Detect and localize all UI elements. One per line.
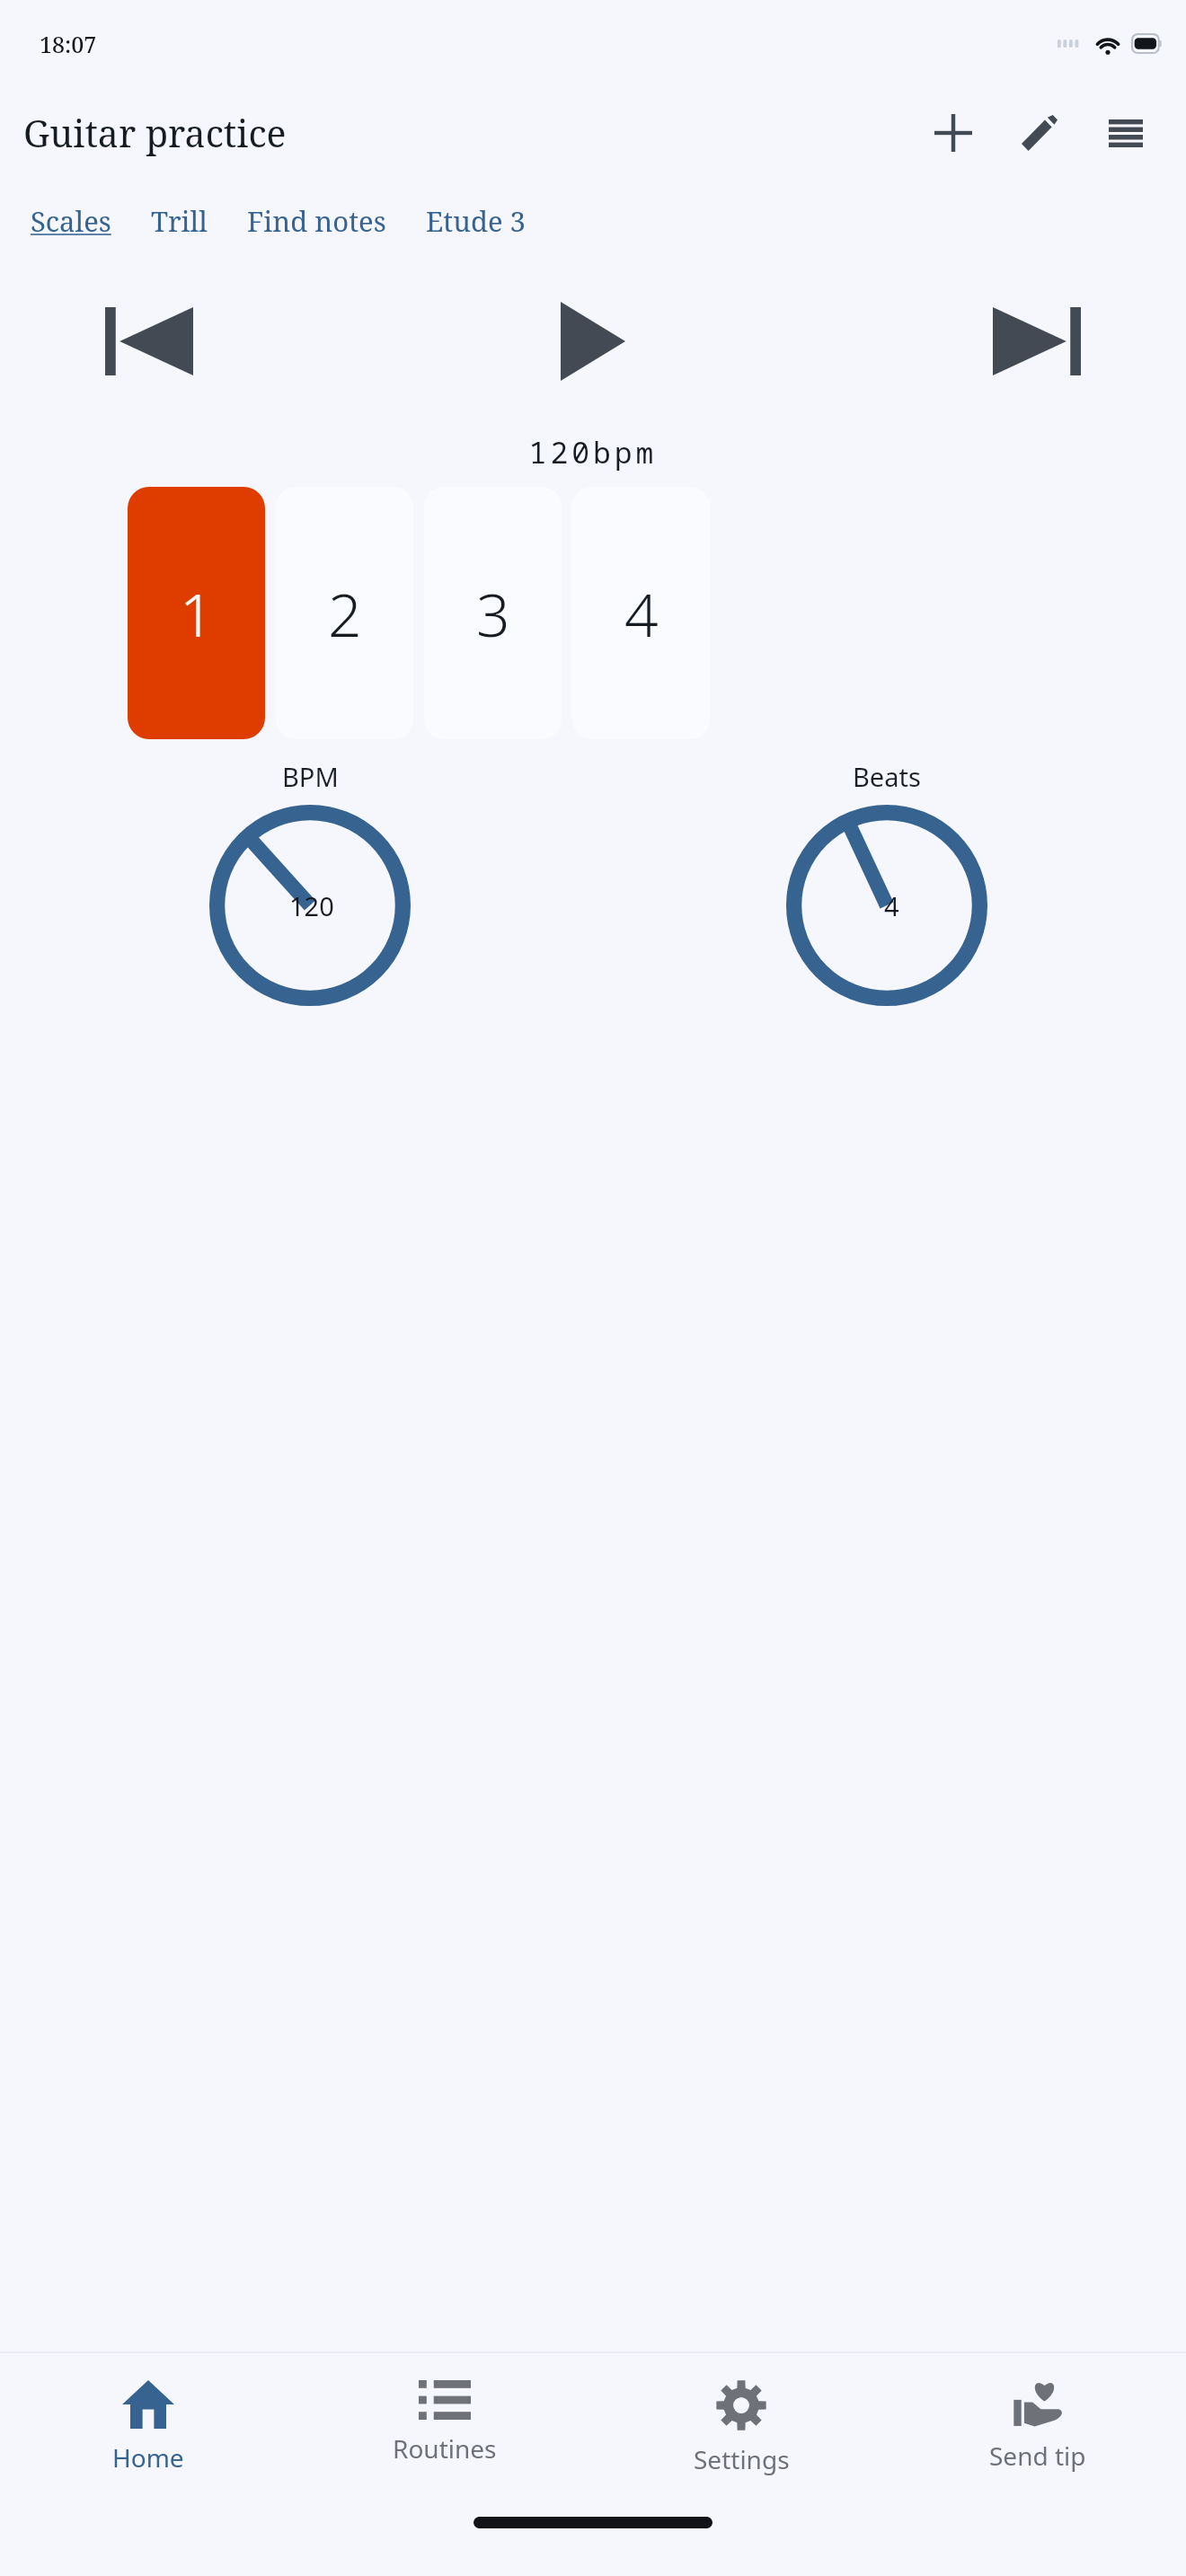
staticText: 3 xyxy=(476,573,510,654)
button[interactable]: Scales xyxy=(22,200,120,242)
button[interactable]: Send tip xyxy=(889,2353,1186,2473)
button[interactable]: Home xyxy=(0,2353,296,2475)
staticText: 2 xyxy=(328,573,362,654)
button[interactable]: 3 xyxy=(424,487,562,739)
staticText: Routines xyxy=(393,2431,497,2466)
button[interactable]: 4 xyxy=(786,805,987,1006)
staticText: 120bpm xyxy=(0,432,1186,472)
button[interactable]: 1 xyxy=(128,487,265,739)
staticText: 18:07 xyxy=(40,29,97,59)
button[interactable]: Find notes xyxy=(238,200,395,242)
staticText: 120 xyxy=(289,888,334,923)
button[interactable]: Play xyxy=(530,292,656,391)
button[interactable]: Edit xyxy=(1005,98,1075,168)
button[interactable]: Add xyxy=(918,98,988,168)
button[interactable]: 4 xyxy=(572,487,710,739)
button[interactable]: Routines xyxy=(296,2353,593,2466)
staticText: Home xyxy=(112,2440,184,2475)
button[interactable]: 120 xyxy=(209,805,411,1006)
staticText: Beats xyxy=(853,759,921,794)
staticText: 4 xyxy=(624,573,659,654)
staticText: Scales xyxy=(31,202,111,240)
button[interactable]: Previous xyxy=(86,292,212,391)
button[interactable]: Trill xyxy=(142,200,217,242)
staticText: Etude 3 xyxy=(426,202,526,240)
button[interactable]: Next xyxy=(974,292,1100,391)
staticText: Guitar practice xyxy=(23,108,918,158)
staticText: Settings xyxy=(694,2442,790,2476)
button[interactable]: Menu xyxy=(1091,98,1161,168)
staticText: 4 xyxy=(884,888,899,923)
staticText: BPM xyxy=(282,759,339,794)
staticText: Trill xyxy=(151,202,208,240)
button[interactable]: Settings xyxy=(593,2353,889,2476)
staticText: Send tip xyxy=(989,2439,1086,2473)
button[interactable]: Etude 3 xyxy=(417,200,535,242)
staticText: 1 xyxy=(180,573,214,654)
staticText: Find notes xyxy=(247,202,386,240)
button[interactable]: 2 xyxy=(276,487,413,739)
